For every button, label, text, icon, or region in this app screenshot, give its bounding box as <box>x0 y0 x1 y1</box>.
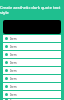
staticText: Create aesthetic dark quote text style <box>0 5 64 15</box>
staticText: Item <box>10 99 17 100</box>
staticText: Item <box>10 93 17 97</box>
staticText: Item <box>10 77 17 81</box>
staticText: Item <box>10 69 17 73</box>
staticText: Item <box>10 53 17 57</box>
staticText: Item <box>10 37 17 41</box>
staticText: Item <box>10 61 17 65</box>
staticText: Item <box>10 85 17 89</box>
staticText: Item <box>10 45 17 49</box>
